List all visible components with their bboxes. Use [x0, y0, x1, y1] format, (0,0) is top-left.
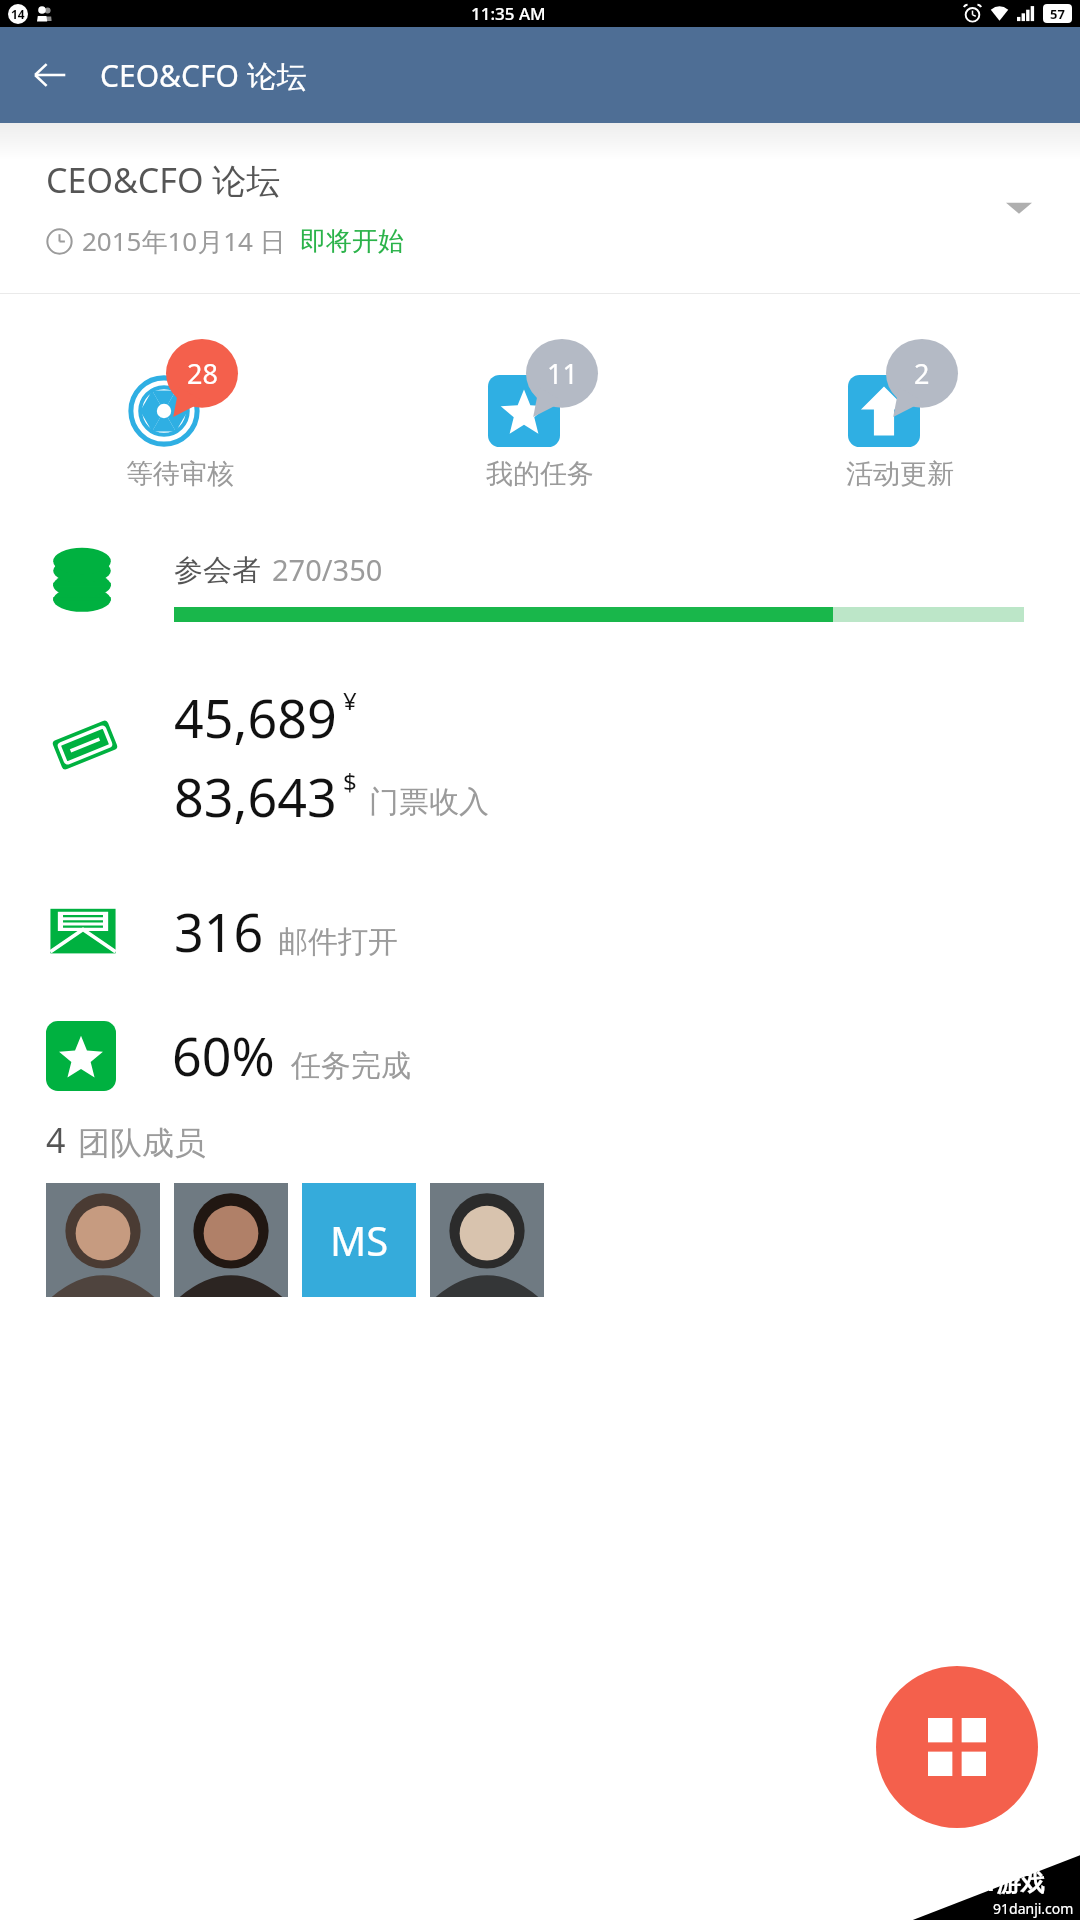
staticText: 即将开始 — [300, 225, 404, 258]
staticText: 316 — [174, 896, 264, 967]
staticText: 14 — [11, 6, 25, 22]
button[interactable]: More actions — [876, 1666, 1038, 1828]
staticText: 团队成员 — [78, 1123, 206, 1163]
staticText: 门票收入 — [369, 783, 489, 821]
button[interactable]: 2 — [720, 335, 1080, 495]
staticText: 我的任务 — [486, 457, 594, 491]
staticText: CEO&CFO 论坛 — [46, 157, 281, 203]
button[interactable]: 参会者 — [0, 542, 1080, 622]
staticText: 活动更新 — [846, 457, 954, 491]
button[interactable]: 45,689 — [0, 682, 1080, 832]
staticText: 参会者 — [174, 552, 261, 589]
button[interactable]: Team member — [46, 1183, 160, 1297]
staticText: 45,689 — [174, 682, 337, 753]
staticText: 等待审核 — [126, 457, 234, 491]
staticText: CEO&CFO 论坛 — [100, 55, 307, 96]
staticText: 4 — [46, 1117, 66, 1163]
staticText: 任务完成 — [291, 1047, 411, 1085]
staticText: 28 — [187, 355, 218, 392]
staticText: 2015年10月14 日 — [82, 223, 286, 259]
button[interactable]: 11 — [360, 335, 720, 495]
staticText: $ — [343, 765, 357, 798]
staticText: 60% — [172, 1020, 275, 1091]
staticText: MS — [330, 1213, 389, 1267]
staticText: 11 — [547, 355, 578, 392]
staticText: 11:35 AM — [471, 2, 546, 25]
staticText: 91游戏 — [969, 1865, 1045, 1898]
staticText: 邮件打开 — [278, 923, 398, 961]
button[interactable]: Team member — [174, 1183, 288, 1297]
staticText: 91danji.com — [993, 1899, 1074, 1918]
staticText: 270/350 — [272, 550, 383, 589]
button[interactable]: MS — [302, 1183, 416, 1297]
staticText: 83,643 — [174, 761, 337, 832]
button[interactable]: Back — [22, 47, 78, 103]
staticText: 2 — [914, 355, 930, 392]
button[interactable]: Team member — [430, 1183, 544, 1297]
staticText: ¥ — [343, 684, 357, 717]
button[interactable]: CEO&CFO 论坛 — [0, 123, 1080, 293]
staticText: 57 — [1050, 5, 1065, 23]
button[interactable]: 60% — [0, 1020, 1080, 1091]
button[interactable]: 28 — [0, 335, 360, 495]
button[interactable]: 316 — [0, 894, 1080, 968]
